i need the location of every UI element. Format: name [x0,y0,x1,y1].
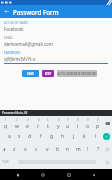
staticText: d [28,133,32,140]
staticText: ?123 [2,160,9,164]
button[interactable]: Home [36,169,50,180]
button[interactable]: 4 [33,117,43,130]
button[interactable]: h [57,130,68,143]
button[interactable]: 5 [43,117,53,130]
button[interactable]: m [73,143,83,156]
button[interactable]: ? [93,143,103,156]
staticText: 5 [47,118,49,122]
button[interactable]: Keyboard [87,169,101,180]
staticText: ? [97,146,100,153]
staticText: b [56,146,60,153]
button[interactable]: , [11,156,16,168]
button[interactable]: Backspace [103,117,112,130]
staticText: 7 [67,118,69,122]
button[interactable]: EDIT [42,70,54,77]
staticText: o [86,123,90,130]
staticText: z [13,146,16,153]
button[interactable]: AUTO-GENERATE PASSWORD [57,70,97,77]
staticText: y [57,123,60,130]
button[interactable]: z [9,143,20,156]
staticText: c [35,146,38,153]
staticText: . [100,160,101,165]
button[interactable]: Emoji [103,143,112,156]
staticText: 2 [16,118,18,122]
staticText: PASSWORD [4,51,21,55]
staticText: Password Form [13,8,59,16]
button[interactable]: 9 [83,117,93,130]
button[interactable]: n [63,143,73,156]
button[interactable]: f [35,130,46,143]
staticText: qWjkmv5A/Yt-x [4,56,36,62]
staticText: SAVE [22,72,39,76]
staticText: k [83,133,86,140]
button[interactable]: Back [0,5,13,18]
button[interactable]: ACCOUNT NAME [4,21,108,36]
staticText: n [66,146,70,153]
staticText: f [40,133,42,140]
button[interactable]: b [53,143,63,156]
button[interactable]: Enter [101,130,112,143]
button[interactable]: 0 [93,117,103,130]
staticText: a [8,133,11,140]
staticText: i [77,123,79,130]
staticText: , [13,160,14,165]
button[interactable]: PASSWORD [4,51,108,67]
staticText: ACCOUNT NAME [4,21,29,25]
button[interactable]: d [24,130,35,143]
staticText: x [24,146,27,153]
button[interactable]: SAVE [22,70,39,77]
button[interactable]: k [79,130,90,143]
staticText: t [47,123,49,130]
staticText: 6 [58,118,60,122]
staticText: 0 [97,118,99,122]
button[interactable]: s [14,130,24,143]
staticText: q [4,123,8,130]
button[interactable]: 1 [0,117,11,130]
staticText: AUTO-GENERATE PASSWORD [57,72,97,76]
staticText: 1 [5,118,7,122]
button[interactable]: Voice input [103,156,112,168]
staticText: l [95,133,97,140]
button[interactable]: 8 [73,117,83,130]
staticText: Facebook [4,26,24,32]
button[interactable]: 6 [53,117,63,130]
button[interactable]: a [4,130,14,143]
button[interactable]: EMAIL [4,36,108,51]
button[interactable]: Shift [0,143,9,156]
button[interactable]: x [20,143,31,156]
staticText: s [18,133,21,140]
button[interactable]: ?123 [0,156,11,168]
button[interactable]: j [68,130,79,143]
staticText: EDIT [42,72,54,76]
button[interactable]: l [90,130,101,143]
staticText: h [61,133,65,140]
button[interactable]: 3 [22,117,33,130]
staticText: demoemail@gmail.com [4,41,53,47]
staticText: v [46,146,49,153]
button[interactable]: c [31,143,42,156]
staticText: 8 [77,118,79,122]
button[interactable]: ! [83,143,93,156]
button[interactable]: Recents [62,169,76,180]
staticText: 4 [38,118,40,122]
button[interactable]: Back [11,169,25,180]
button[interactable]: 7 [63,117,73,130]
staticText: e [26,123,29,130]
staticText: j [73,133,75,140]
button[interactable]: 2 [11,117,22,130]
staticText: Password Auto-fill [2,111,28,115]
button[interactable]: v [42,143,53,156]
staticText: p [96,123,100,130]
staticText: m [76,146,81,153]
staticText: EMAIL [4,36,14,40]
button[interactable]: Password Auto-fill [0,110,112,116]
staticText: u [66,123,70,130]
staticText: w [15,123,19,130]
staticText: r [37,123,40,130]
staticText: 9 [87,118,89,122]
staticText: 3 [27,118,29,122]
button[interactable]: g [46,130,57,143]
staticText: g [50,133,54,140]
